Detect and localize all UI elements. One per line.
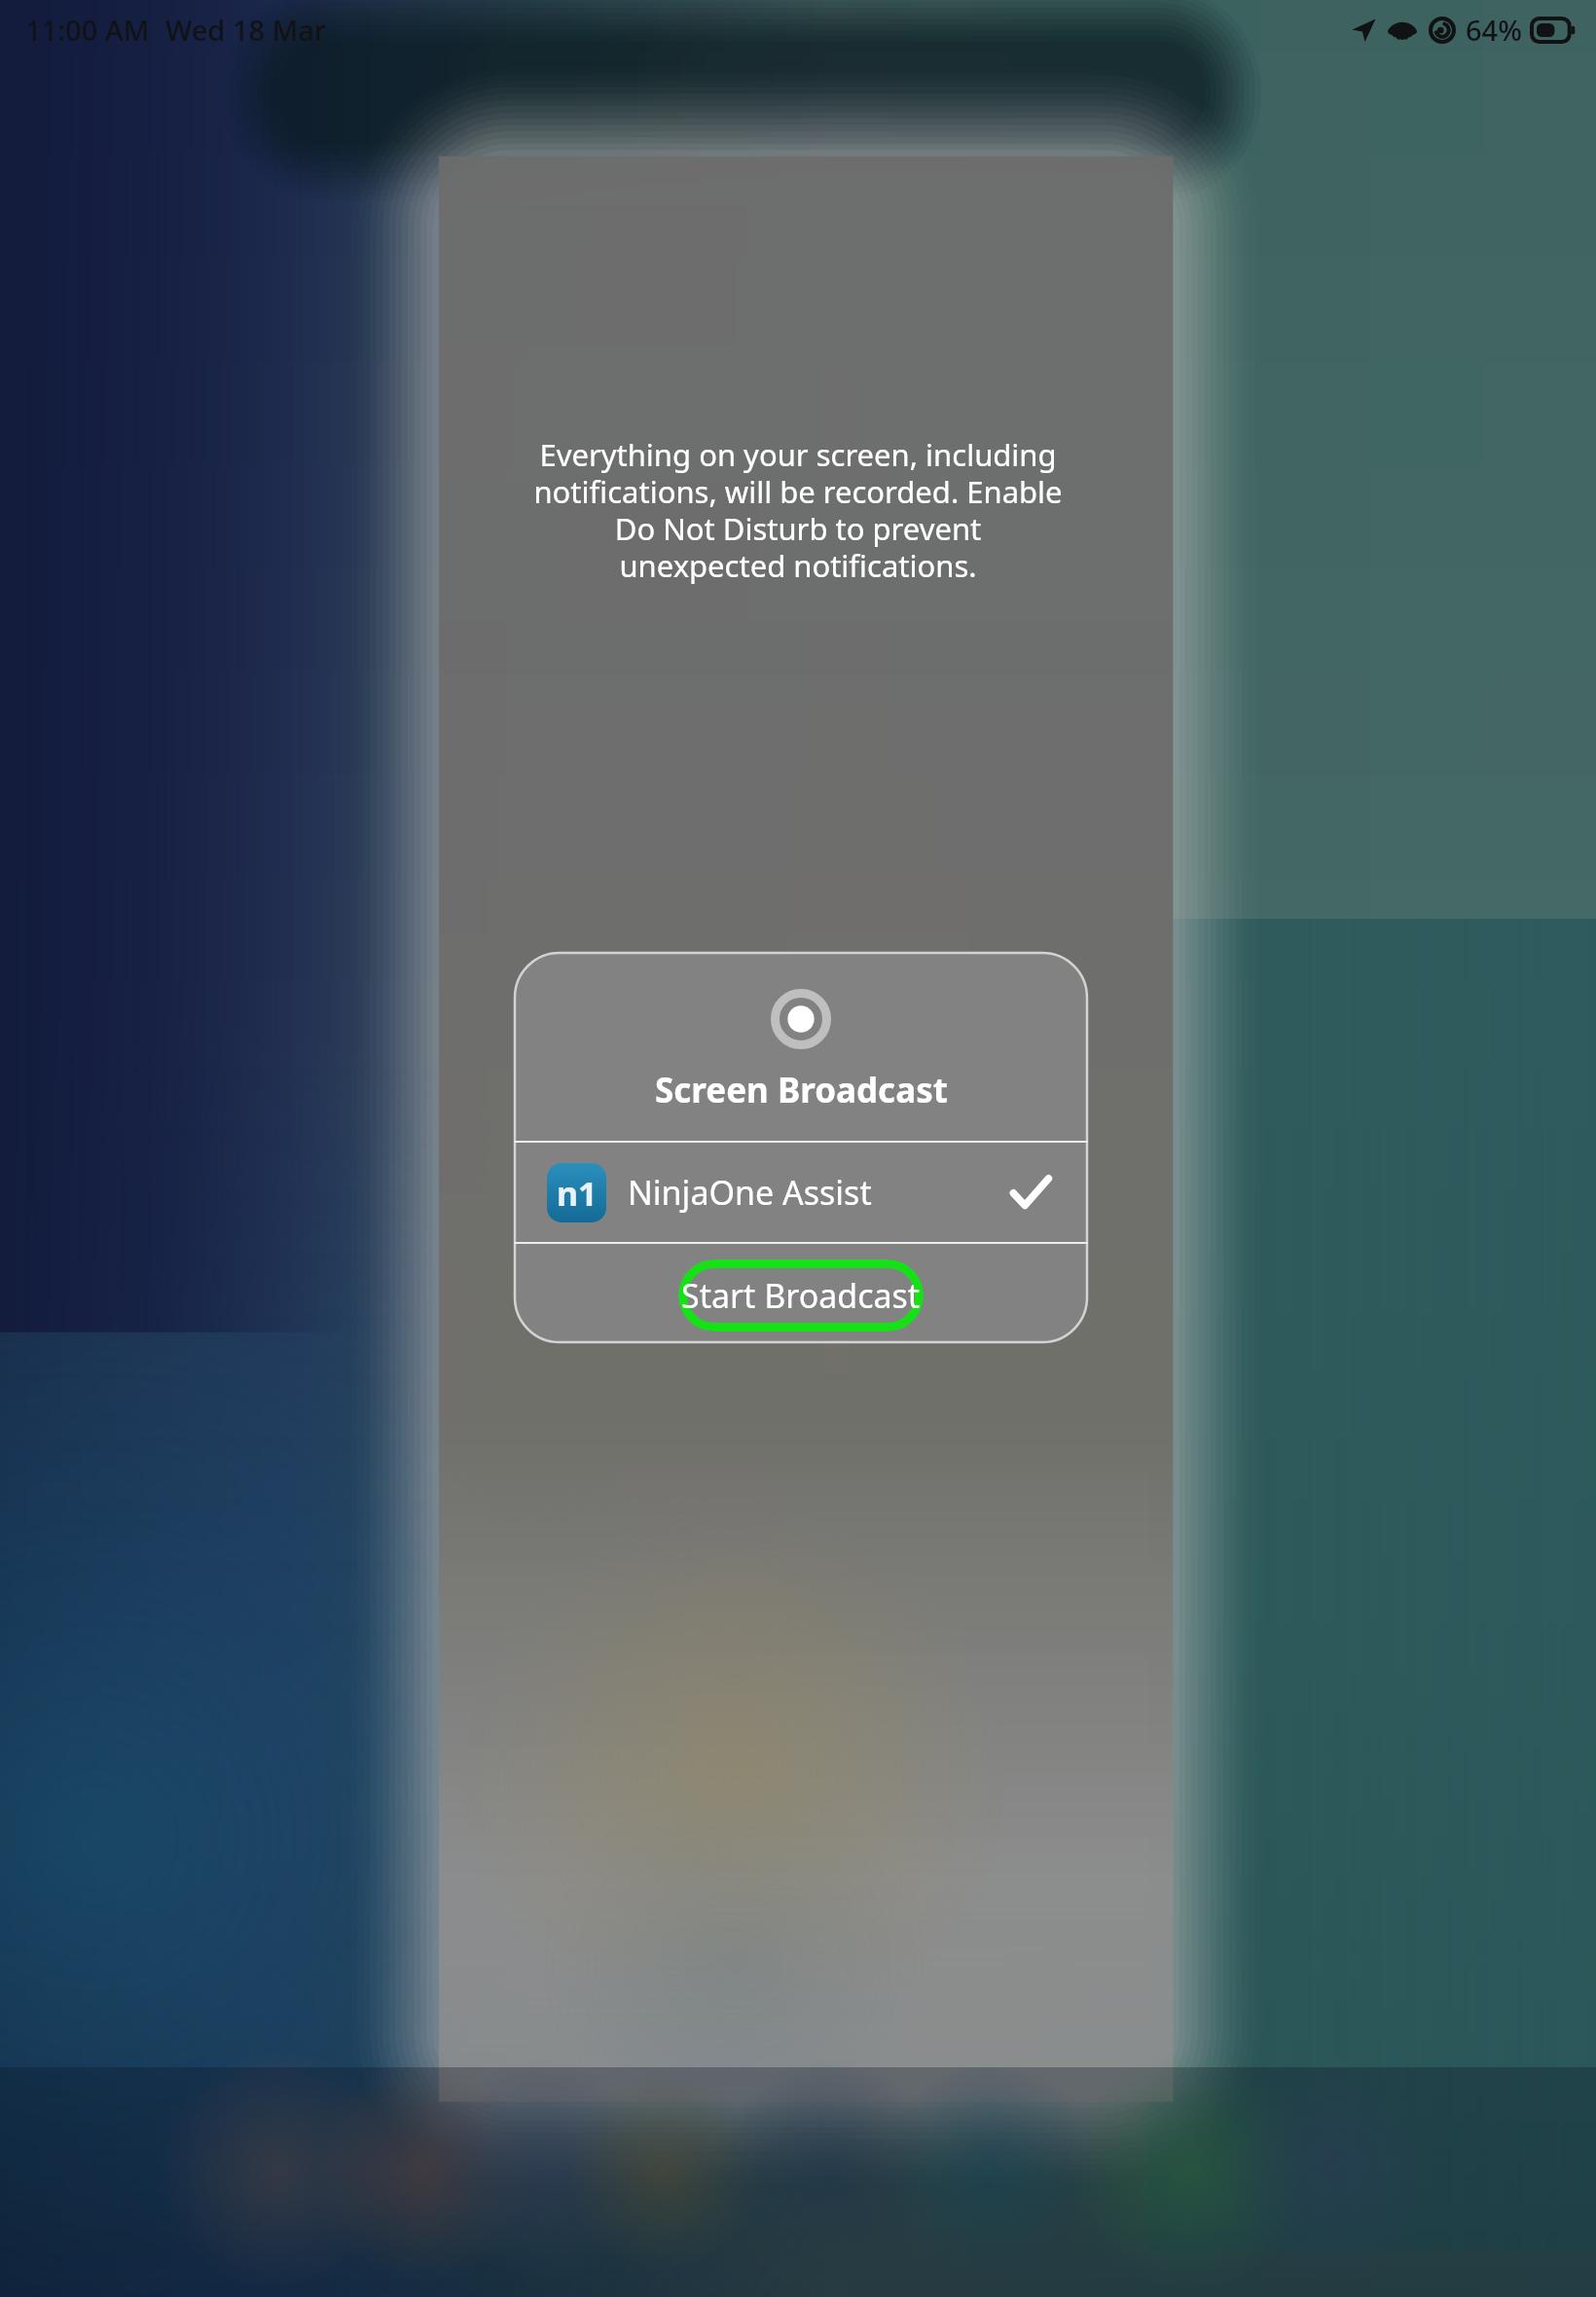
staticText: n1 xyxy=(557,1171,598,1216)
staticText: Everything on your screen, including not… xyxy=(533,434,1063,586)
other: Location xyxy=(1351,18,1376,43)
staticText: 11:00 AM xyxy=(25,11,150,49)
staticText: 64% xyxy=(1466,11,1522,49)
other: Record xyxy=(771,989,831,1049)
staticText: Wed 18 Mar xyxy=(165,11,327,49)
other: Wi-Fi xyxy=(1388,16,1417,45)
other: Battery 64 percent xyxy=(1532,18,1575,42)
staticText: Start Broadcast xyxy=(681,1273,921,1318)
staticText: NinjaOne Assist xyxy=(628,1170,872,1215)
button[interactable]: n1 xyxy=(514,1143,1088,1242)
staticText: Screen Broadcast xyxy=(655,1067,948,1113)
button[interactable]: Start Broadcast xyxy=(678,1259,924,1331)
other: Focus xyxy=(1429,17,1456,44)
